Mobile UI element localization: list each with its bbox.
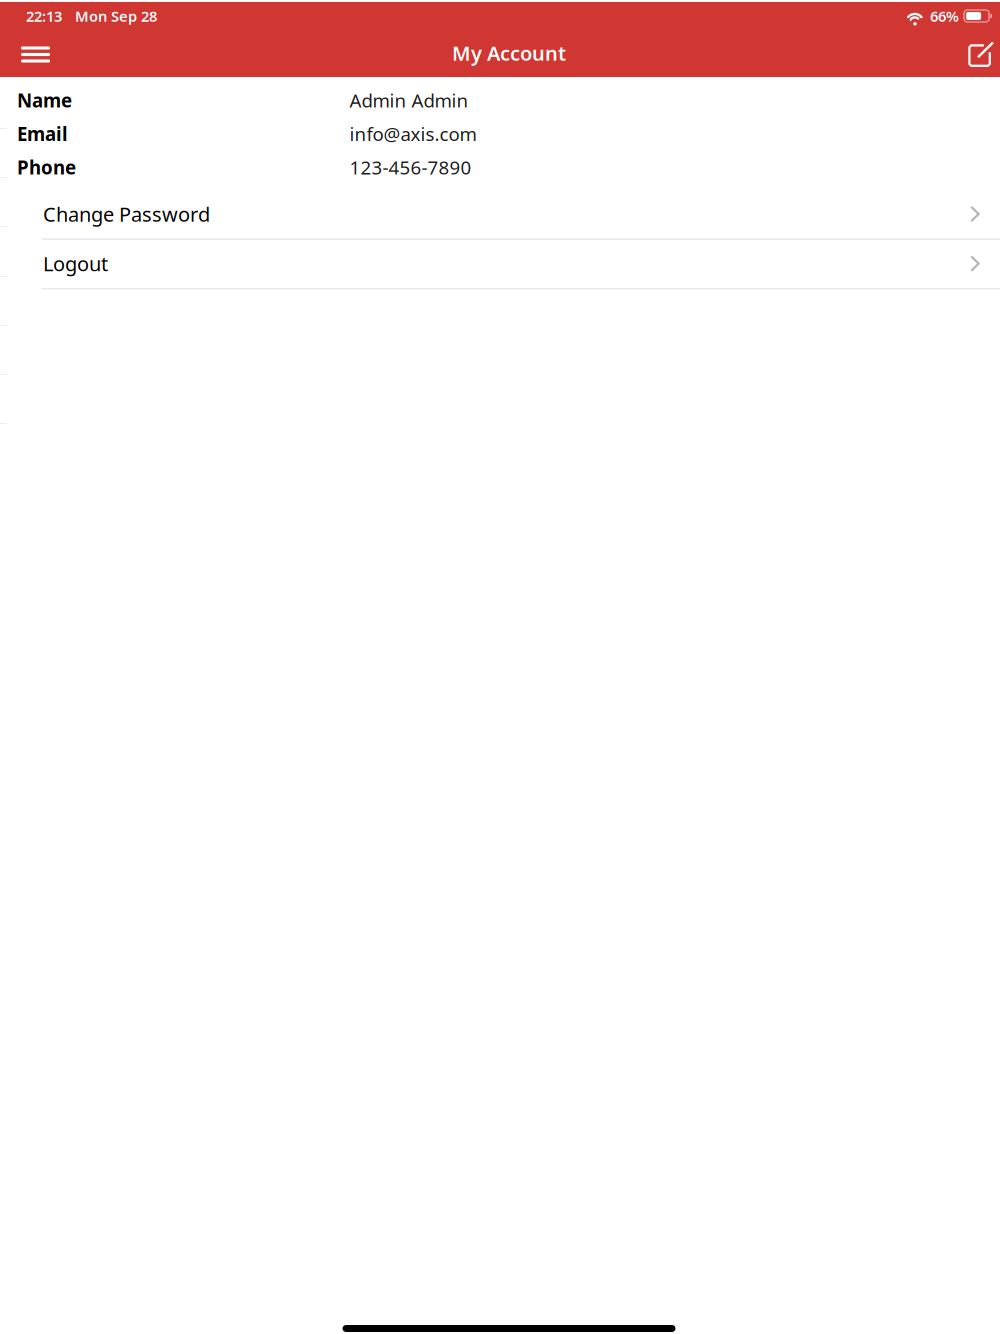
- staticText: Logout: [43, 250, 108, 277]
- staticText: Phone: [17, 155, 76, 180]
- button[interactable]: Compose: [956, 30, 1000, 77]
- staticText: 22:13: [26, 6, 62, 26]
- staticText: My Account: [452, 40, 566, 66]
- staticText: 123-456-7890: [349, 155, 471, 180]
- staticText: Name: [17, 88, 72, 113]
- button[interactable]: Menu: [0, 30, 71, 77]
- staticText: 66%: [930, 6, 959, 26]
- staticText: info@axis.com: [349, 121, 476, 146]
- staticText: Change Password: [43, 201, 210, 227]
- staticText: Email: [17, 121, 68, 146]
- staticText: Mon Sep 28: [75, 6, 157, 26]
- button[interactable]: Change Password: [0, 190, 1000, 240]
- button[interactable]: Logout: [0, 240, 1000, 289]
- staticText: Admin Admin: [349, 88, 468, 113]
